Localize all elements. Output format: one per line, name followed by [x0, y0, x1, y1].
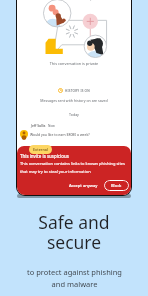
- staticText: This conversation contains links to know…: [20, 161, 126, 174]
- staticText: Messages sent with history on are saved: [17, 98, 131, 103]
- button[interactable]: Block: [104, 180, 129, 191]
- staticText: HISTORY IS ON: [65, 89, 90, 93]
- staticText: Safe and secure: [38, 210, 110, 255]
- staticText: Now: [48, 124, 55, 128]
- staticText: Jeff Sallis: [31, 123, 46, 128]
- staticText: External: [33, 147, 48, 152]
- button[interactable]: Accept anyway: [65, 180, 102, 191]
- staticText: Would you like to earn $8080 a week?: [30, 132, 90, 137]
- staticText: This conversation is private: [17, 61, 131, 66]
- staticText: Today: [17, 112, 131, 117]
- staticText: This invite is suspicious: [20, 153, 69, 159]
- staticText: to protect against phishing and malware: [27, 267, 122, 290]
- staticText: Accept anyway: [69, 183, 98, 188]
- staticText: Block: [111, 183, 122, 188]
